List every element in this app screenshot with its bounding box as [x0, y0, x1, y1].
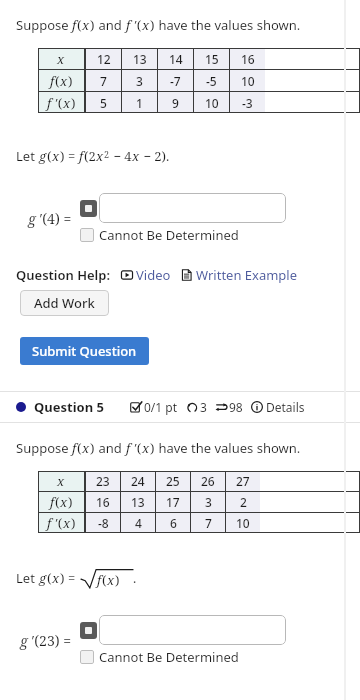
staticText: (2	[84, 147, 96, 165]
staticText: x	[63, 514, 71, 532]
staticText: ′(	[52, 94, 63, 112]
staticText: 10	[241, 73, 255, 89]
staticText: Suppose	[16, 16, 72, 34]
staticText: g	[39, 569, 47, 587]
staticText: (	[102, 571, 107, 589]
staticText: ) =	[60, 147, 79, 165]
button[interactable]: Math input keypad	[80, 200, 97, 217]
staticText: (	[77, 439, 82, 457]
staticText: x	[142, 16, 150, 34]
staticText: f	[72, 16, 77, 34]
staticText: )	[90, 16, 95, 34]
staticText: and	[95, 16, 126, 34]
staticText: Add Work	[34, 294, 95, 312]
staticText: g	[28, 209, 36, 228]
staticText: ) =	[60, 569, 79, 587]
staticText: f	[50, 493, 55, 511]
staticText: f	[97, 571, 102, 589]
staticText: 7	[100, 73, 107, 89]
staticText: 1	[136, 95, 143, 111]
staticText: x	[82, 16, 90, 34]
staticText: (	[55, 72, 60, 90]
button[interactable]: Cannot Be Determined	[80, 226, 239, 244]
staticText: x	[60, 72, 68, 90]
staticText: ′(	[131, 439, 142, 457]
staticText: ′(4) =	[36, 209, 72, 228]
staticText: have the values shown.	[155, 439, 301, 457]
button[interactable]: Math input keypad	[80, 622, 97, 639]
staticText: 24	[131, 473, 145, 489]
staticText: )	[115, 571, 120, 589]
staticText: Written Example	[196, 266, 298, 284]
button[interactable]: Cannot Be Determined	[80, 648, 239, 666]
staticText: )	[150, 16, 155, 34]
staticText: 13	[133, 51, 147, 67]
staticText: Submit Question	[32, 342, 137, 360]
staticText: )	[68, 72, 73, 90]
button[interactable]: Submit Question	[20, 337, 149, 365]
staticText: x	[142, 439, 150, 457]
staticText: Cannot Be Determined	[99, 648, 239, 666]
staticText: (	[47, 569, 52, 587]
staticText: .	[133, 569, 137, 587]
staticText: f	[79, 147, 84, 165]
staticText: 25	[166, 473, 180, 489]
staticText: 16	[96, 494, 110, 510]
staticText: (	[47, 147, 52, 165]
staticText: f	[126, 439, 131, 457]
staticText: f	[72, 439, 77, 457]
staticText: x	[52, 569, 60, 587]
staticText: Question 5	[34, 398, 104, 416]
staticText: )	[71, 514, 76, 532]
staticText: x	[63, 94, 71, 112]
staticText: ′(	[131, 16, 142, 34]
button[interactable]: Details	[251, 399, 305, 415]
staticText: 10	[236, 515, 250, 531]
staticText: (	[77, 16, 82, 34]
button[interactable]	[99, 193, 286, 223]
staticText: f	[126, 16, 131, 34]
staticText: 4	[135, 515, 142, 531]
staticText: x	[132, 147, 140, 165]
staticText: − 2).	[140, 147, 170, 165]
staticText: 5	[100, 95, 107, 111]
staticText: Video	[136, 266, 171, 284]
staticText: (	[55, 493, 60, 511]
staticText: 14	[169, 51, 183, 67]
staticText: 23	[96, 473, 110, 489]
staticText: 12	[97, 51, 111, 67]
staticText: − 4	[110, 147, 132, 165]
button[interactable]: Written Example	[181, 266, 298, 284]
staticText: 2	[104, 148, 110, 160]
staticText: x	[96, 147, 104, 165]
staticText: 16	[241, 51, 255, 67]
staticText: x	[52, 147, 60, 165]
staticText: ′(23) =	[28, 631, 72, 650]
staticText: Question Help:	[16, 266, 111, 284]
staticText: 26	[201, 473, 215, 489]
staticText: )	[90, 439, 95, 457]
staticText: )	[71, 94, 76, 112]
staticText: 2	[240, 494, 247, 510]
button[interactable]	[99, 615, 286, 645]
staticText: 6	[170, 515, 177, 531]
staticText: f	[47, 514, 52, 532]
staticText: x	[57, 50, 65, 68]
staticText: and	[95, 439, 126, 457]
staticText: 3	[136, 73, 143, 89]
staticText: 15	[205, 51, 219, 67]
staticText: x	[57, 472, 65, 490]
staticText: -3	[242, 95, 253, 111]
staticText: )	[68, 493, 73, 511]
button[interactable]: Video	[121, 266, 171, 284]
staticText: 9	[172, 95, 179, 111]
button[interactable]: 0/1 pt	[130, 399, 178, 415]
staticText: x	[82, 439, 90, 457]
staticText: Cannot Be Determined	[99, 226, 239, 244]
button[interactable]: Add Work	[20, 290, 109, 316]
staticText: 3	[200, 399, 207, 415]
staticText: 27	[236, 473, 250, 489]
staticText: x	[107, 571, 115, 589]
staticText: 13	[131, 494, 145, 510]
staticText: have the values shown.	[155, 16, 301, 34]
